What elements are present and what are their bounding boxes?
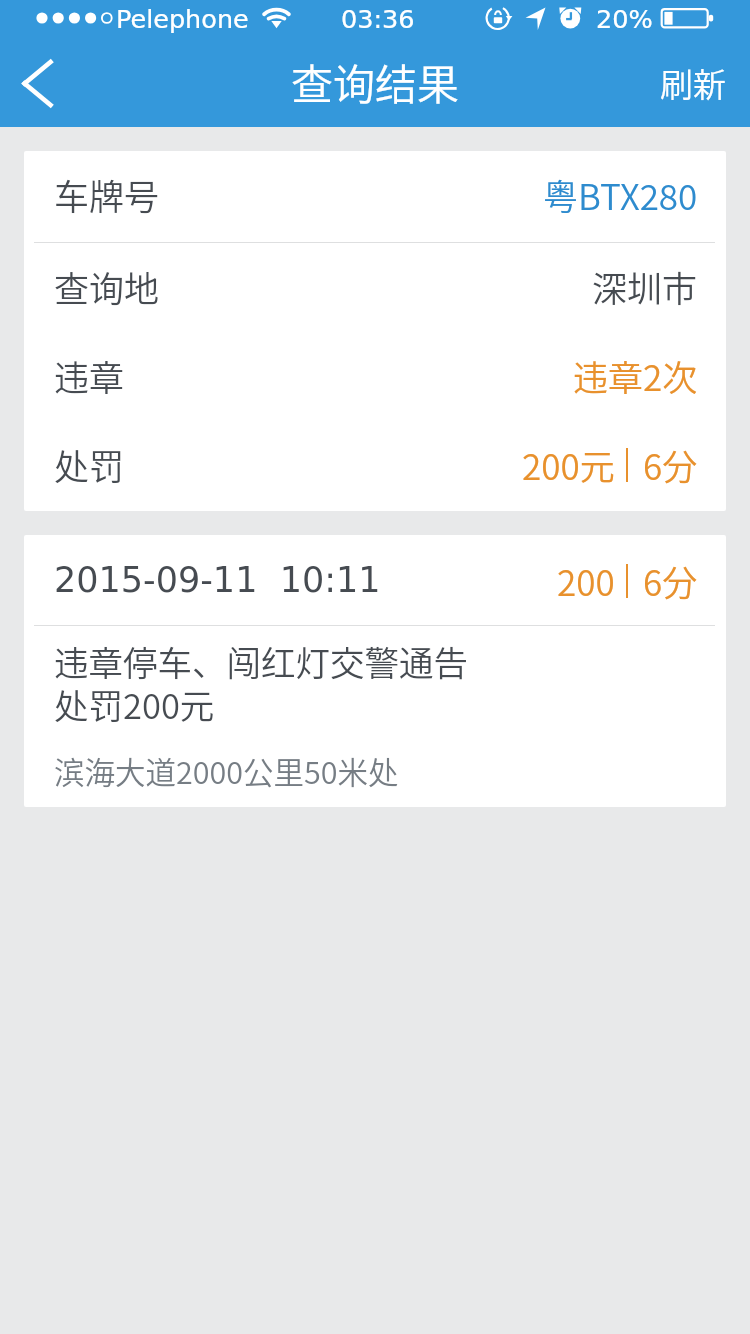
staticText: 滨海大道2000公里50米处: [54, 749, 399, 793]
staticText: 03:36: [341, 4, 415, 34]
staticText: 车牌号: [54, 169, 160, 220]
button[interactable]: 违章: [24, 333, 726, 422]
button[interactable]: 2015-09-11 10:11: [24, 535, 726, 807]
staticText: 处罚: [54, 439, 125, 490]
button[interactable]: 查询地: [24, 243, 726, 333]
staticText: 6分: [643, 439, 698, 490]
staticText: 6分: [643, 555, 698, 606]
staticText: 深圳市: [592, 261, 698, 312]
staticText: 违章: [54, 350, 125, 401]
button[interactable]: 处罚: [24, 422, 726, 511]
staticText: 20%: [596, 4, 653, 34]
button[interactable]: Back: [0, 38, 76, 127]
staticText: 200元: [522, 439, 615, 490]
staticText: 粤BTX280: [543, 169, 698, 220]
staticText: 200: [557, 555, 615, 606]
staticText: 违章2次: [573, 350, 698, 401]
staticText: 违章停车、闯红灯交警通告 处罚200元: [54, 636, 468, 729]
button[interactable]: 车牌号: [24, 151, 726, 242]
staticText: 2015-09-11 10:11: [54, 560, 381, 601]
staticText: 查询地: [54, 261, 160, 312]
staticText: Pelephone: [116, 4, 249, 34]
staticText: 刷新: [660, 59, 726, 107]
button[interactable]: 刷新: [660, 38, 726, 127]
staticText: 查询结果: [291, 51, 460, 112]
